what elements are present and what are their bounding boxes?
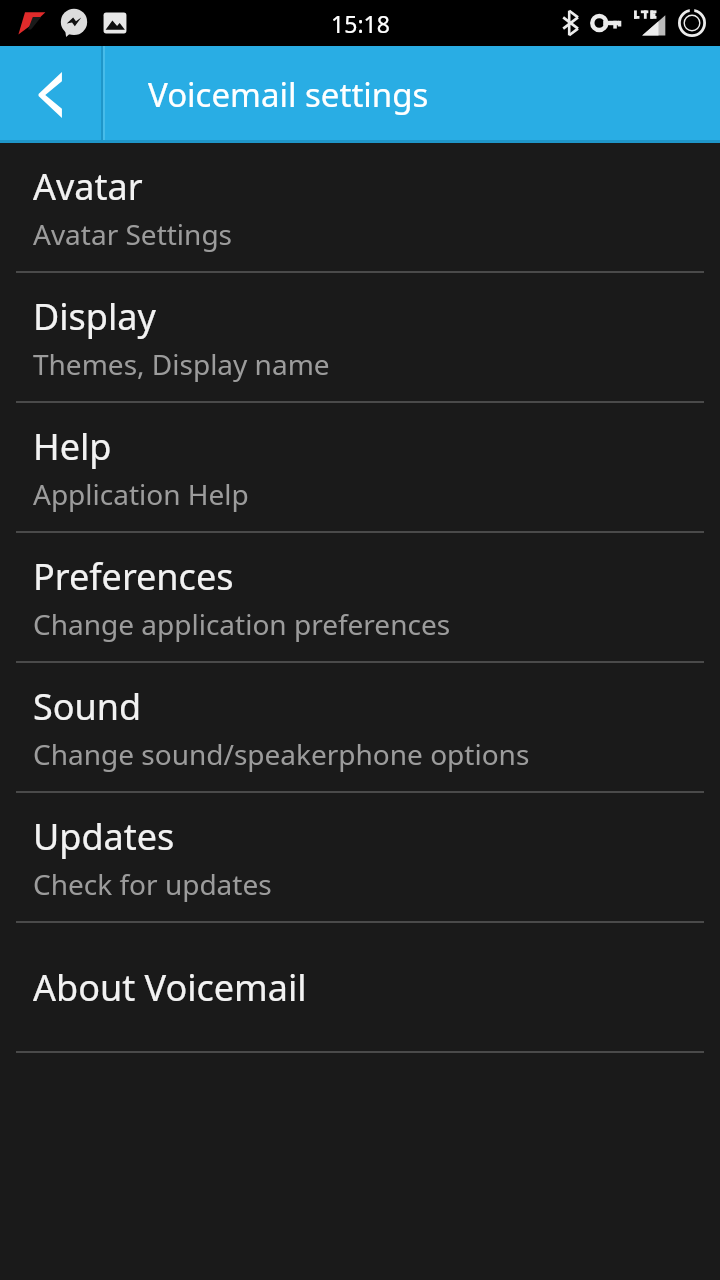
staticText: Help bbox=[33, 422, 112, 471]
button[interactable]: About Voicemail bbox=[0, 923, 720, 1051]
staticText: Display bbox=[33, 292, 156, 341]
staticText: About Voicemail bbox=[33, 963, 307, 1012]
staticText: 15:18 bbox=[331, 8, 390, 39]
staticText: Voicemail settings bbox=[148, 72, 429, 117]
staticText: Avatar bbox=[33, 162, 143, 211]
staticText: Avatar Settings bbox=[33, 215, 233, 253]
staticText: Change application preferences bbox=[33, 605, 451, 643]
button[interactable]: Display bbox=[0, 273, 720, 401]
staticText: Themes, Display name bbox=[33, 345, 330, 383]
staticText: Preferences bbox=[33, 552, 234, 601]
staticText: Change sound/speakerphone options bbox=[33, 735, 530, 773]
staticText: Check for updates bbox=[33, 865, 272, 903]
staticText: Updates bbox=[33, 812, 175, 861]
button[interactable]: Preferences bbox=[0, 533, 720, 661]
button[interactable]: Help bbox=[0, 403, 720, 531]
button[interactable]: Avatar bbox=[0, 143, 720, 271]
staticText: Sound bbox=[33, 682, 142, 731]
button[interactable]: Back bbox=[0, 46, 102, 143]
button[interactable]: Sound bbox=[0, 663, 720, 791]
button[interactable]: Updates bbox=[0, 793, 720, 921]
staticText: Application Help bbox=[33, 475, 249, 513]
